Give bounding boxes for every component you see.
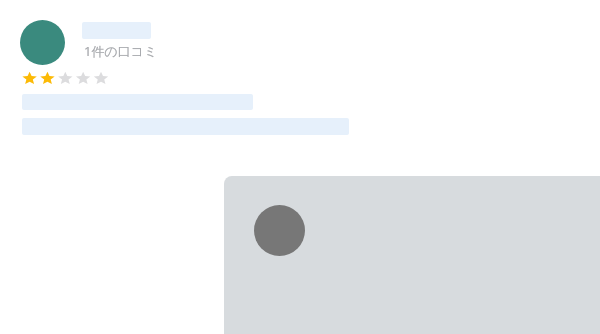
staticText: 1件の口コミ xyxy=(84,42,158,60)
button[interactable]: Reviewer avatar xyxy=(20,20,65,65)
button[interactable]: Rating 2 of 5 stars xyxy=(18,68,118,88)
button[interactable]: Profile photo xyxy=(254,205,305,256)
button[interactable]: Profile photo xyxy=(224,176,600,334)
button[interactable]: Reviewer avatar xyxy=(0,0,376,160)
